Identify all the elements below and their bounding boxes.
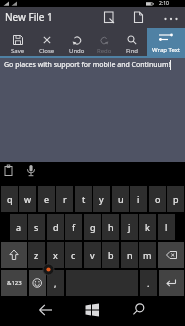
button[interactable] — [82, 300, 103, 320]
button[interactable] — [24, 163, 38, 179]
button[interactable]: r — [56, 186, 73, 212]
button[interactable]: l — [158, 214, 175, 240]
button[interactable]: w — [19, 186, 36, 212]
staticText: g — [90, 221, 96, 233]
button[interactable]: Save — [4, 28, 32, 56]
staticText: f — [72, 221, 76, 233]
staticText: l — [165, 221, 168, 233]
button[interactable]: y — [93, 186, 110, 212]
button[interactable] — [2, 163, 16, 179]
button[interactable]: p — [167, 186, 184, 212]
staticText: x — [53, 249, 58, 261]
button[interactable]: x — [47, 242, 64, 268]
button[interactable]: z — [28, 242, 45, 268]
staticText: Redo — [97, 47, 112, 55]
staticText: h — [108, 221, 114, 233]
button[interactable] — [161, 9, 183, 27]
staticText: v — [90, 249, 95, 261]
staticText: s — [34, 221, 39, 233]
button[interactable] — [129, 9, 149, 27]
button[interactable]: m — [139, 242, 156, 268]
staticText: z — [34, 249, 39, 261]
button[interactable]: o — [149, 186, 166, 212]
button[interactable]: s — [28, 214, 45, 240]
button[interactable] — [36, 300, 56, 320]
staticText: m — [143, 249, 152, 261]
staticText: b — [108, 249, 114, 261]
staticText: k — [145, 221, 150, 233]
staticText: Undo — [69, 47, 85, 55]
staticText: p — [173, 193, 179, 205]
staticText: Close — [39, 47, 55, 55]
staticText: o — [155, 193, 161, 205]
staticText: c — [71, 249, 76, 261]
button[interactable]: Close — [33, 28, 61, 56]
staticText: , — [54, 277, 57, 289]
button[interactable] — [1, 242, 27, 268]
button[interactable] — [100, 9, 120, 27]
button[interactable]: i — [130, 186, 147, 212]
staticText: 2:10 — [159, 0, 169, 7]
staticText: q — [7, 193, 13, 205]
staticText: Go places with support for mobile and Co… — [4, 60, 171, 70]
button[interactable]: u — [112, 186, 129, 212]
button[interactable] — [159, 270, 184, 296]
button[interactable]: c — [65, 242, 82, 268]
button[interactable]: Go places with support for mobile and Co… — [0, 58, 185, 162]
button[interactable]: Redo — [90, 28, 118, 56]
button[interactable]: f — [65, 214, 82, 240]
button[interactable]: k — [139, 214, 156, 240]
staticText: d — [53, 221, 59, 233]
button[interactable]: a — [10, 214, 27, 240]
staticText: Find — [126, 47, 139, 55]
button[interactable]: j — [121, 214, 138, 240]
staticText: Wrap Text — [152, 46, 181, 54]
button[interactable]: , — [47, 270, 64, 296]
staticText: w — [24, 193, 32, 205]
button[interactable]: d — [47, 214, 64, 240]
button[interactable]: Undo — [63, 28, 91, 56]
button[interactable]: . — [140, 270, 157, 296]
staticText: u — [118, 193, 124, 205]
button[interactable]: b — [102, 242, 119, 268]
staticText: y — [99, 193, 104, 205]
button[interactable]: g — [84, 214, 101, 240]
staticText: . — [147, 277, 150, 289]
button[interactable]: q — [1, 186, 18, 212]
button[interactable]: n — [121, 242, 138, 268]
button[interactable] — [129, 300, 149, 320]
button[interactable]: v — [84, 242, 101, 268]
button[interactable] — [158, 242, 184, 268]
staticText: &123 — [7, 279, 22, 287]
staticText: a — [16, 221, 22, 233]
staticText: e — [44, 193, 50, 205]
staticText: j — [128, 221, 131, 233]
button[interactable]: h — [102, 214, 119, 240]
button[interactable]: New File 1 — [0, 7, 185, 28]
button[interactable]: &123 — [1, 270, 27, 296]
staticText: t — [82, 193, 86, 205]
staticText: n — [127, 249, 133, 261]
button[interactable]: Wrap Text — [147, 28, 185, 58]
button[interactable] — [29, 270, 46, 296]
staticText: Save — [11, 47, 25, 55]
button[interactable]: Find — [118, 28, 146, 56]
staticText: r — [63, 193, 67, 205]
staticText: i — [137, 193, 140, 205]
button[interactable]: e — [38, 186, 55, 212]
button[interactable]: t — [75, 186, 92, 212]
staticText: New File 1 — [5, 10, 53, 24]
